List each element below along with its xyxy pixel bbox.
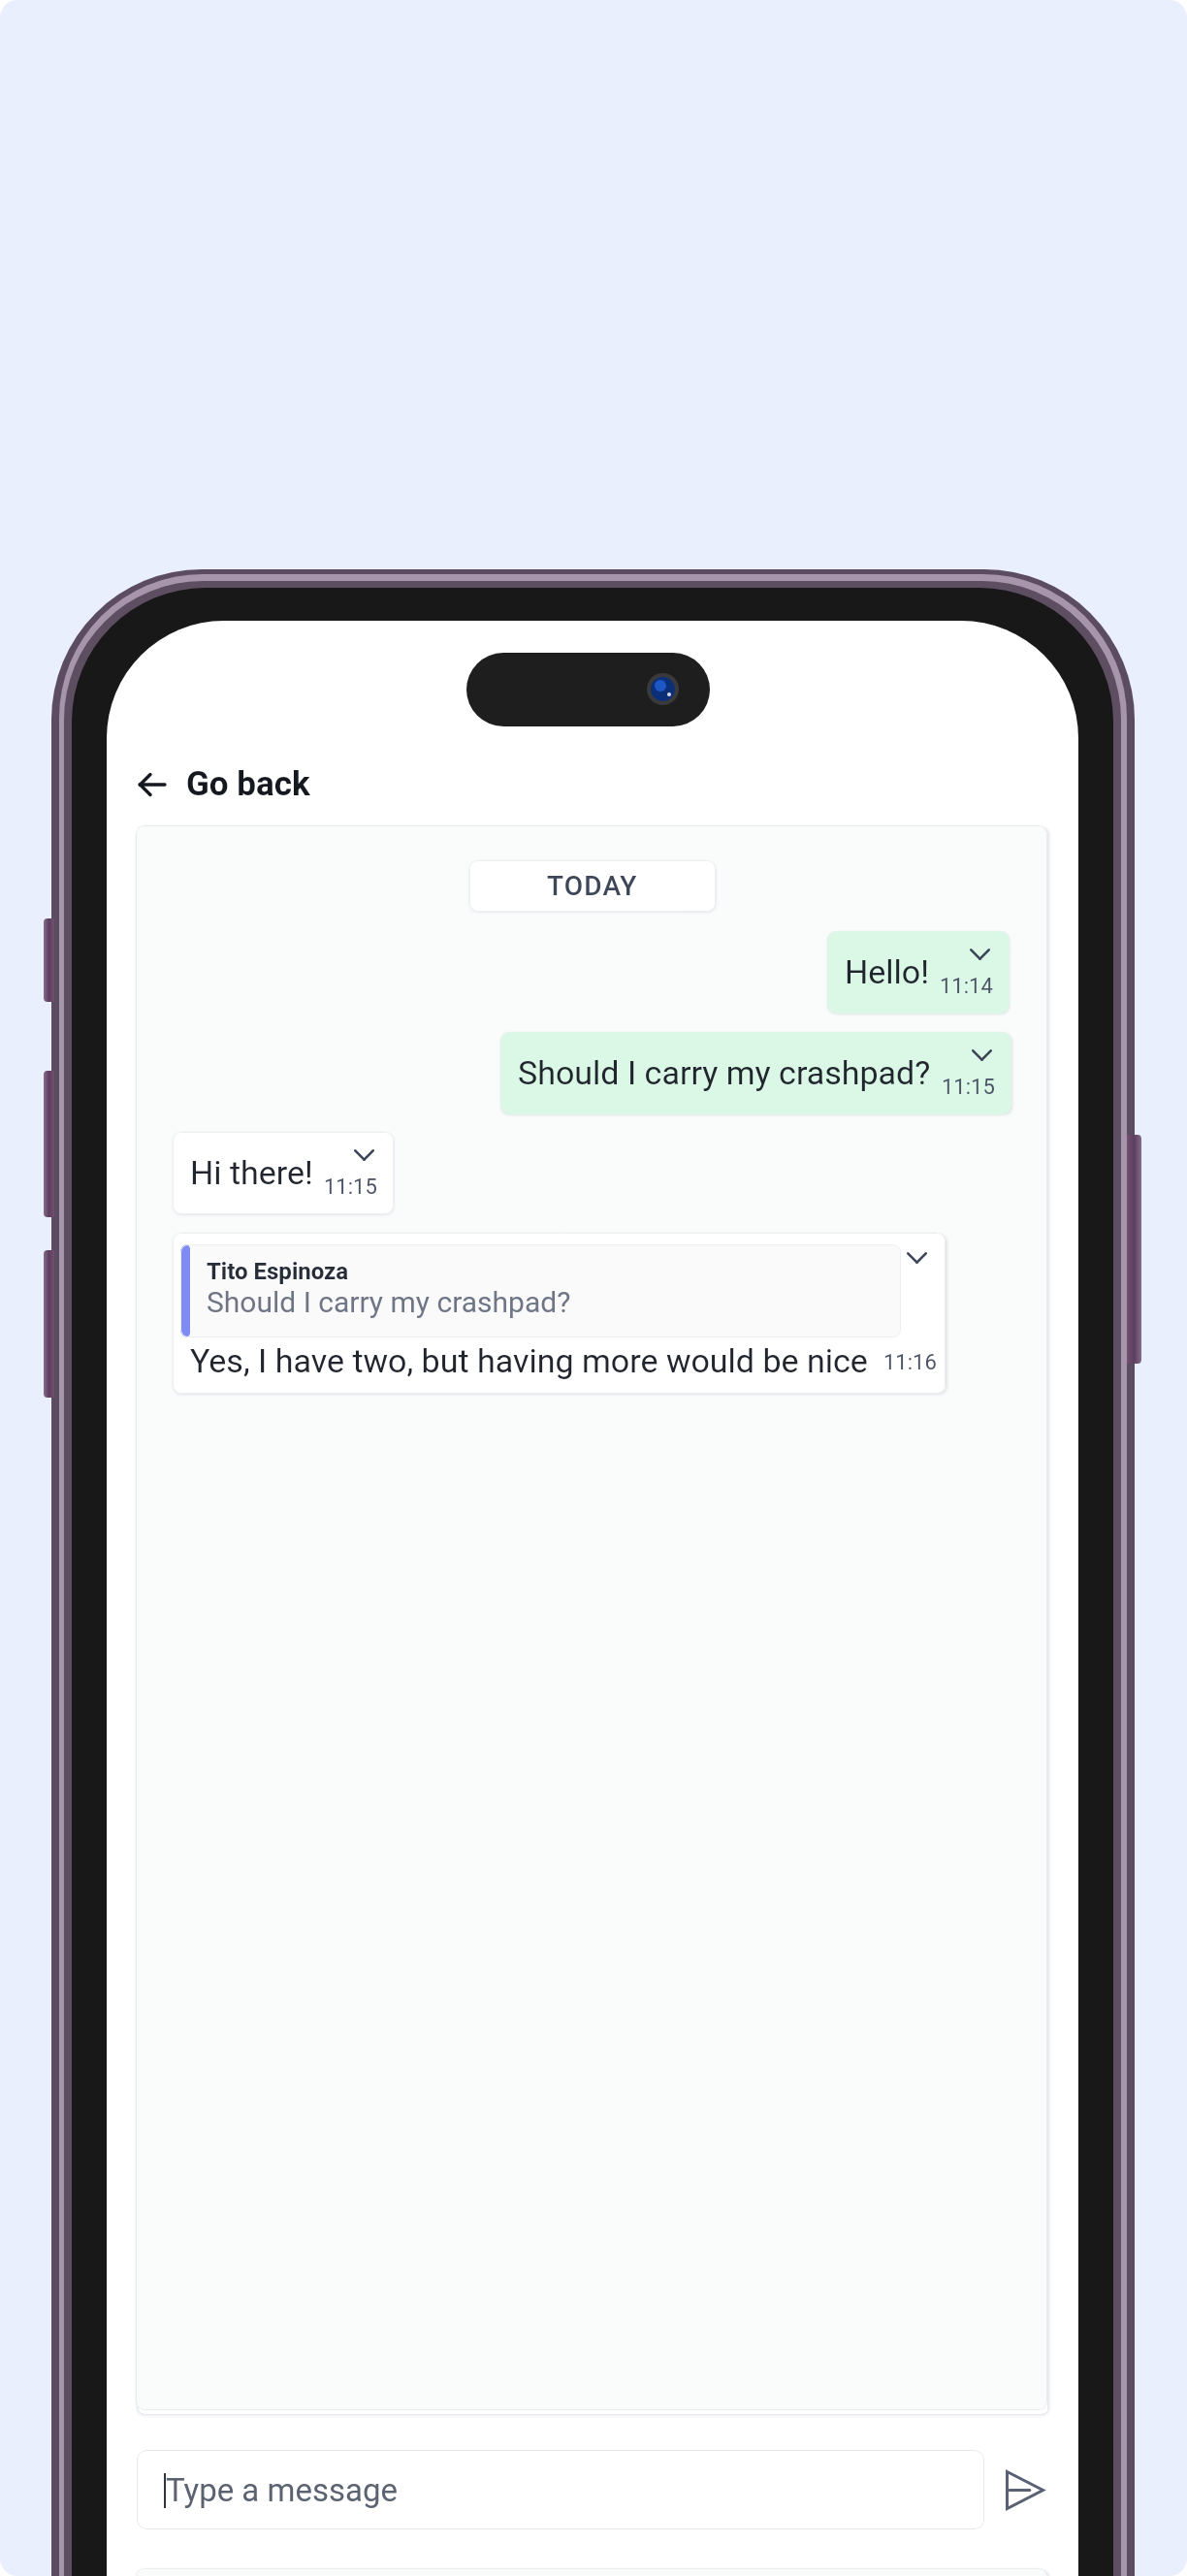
staticText: TODAY: [547, 870, 638, 902]
staticText: 11:15: [942, 1075, 995, 1100]
button[interactable]: TODAY: [469, 860, 716, 912]
button[interactable]: Hello!: [827, 931, 1010, 1014]
staticText: 11:15: [324, 1175, 377, 1200]
button[interactable]: Hi there!: [173, 1132, 394, 1214]
button[interactable]: Type a message: [137, 2450, 984, 2529]
staticText: Should I carry my crashpad?: [518, 1053, 931, 1092]
staticText: Should I carry my crashpad?: [207, 1285, 571, 1319]
button[interactable]: Should I carry my crashpad?: [500, 1032, 1011, 1114]
staticText: Tito Espinoza: [207, 1258, 349, 1285]
staticText: Hi there!: [190, 1153, 313, 1192]
staticText: 11:14: [940, 974, 993, 999]
button[interactable]: Go back: [129, 755, 320, 814]
button[interactable]: Send message: [992, 2457, 1058, 2523]
button[interactable]: Tito Espinoza: [173, 1233, 946, 1394]
staticText: Hello!: [845, 952, 929, 991]
staticText: Yes, I have two, but having more would b…: [190, 1341, 868, 1380]
staticText: Go back: [186, 764, 310, 804]
staticText: Type a message: [166, 2471, 398, 2509]
staticText: 11:16: [883, 1350, 937, 1375]
